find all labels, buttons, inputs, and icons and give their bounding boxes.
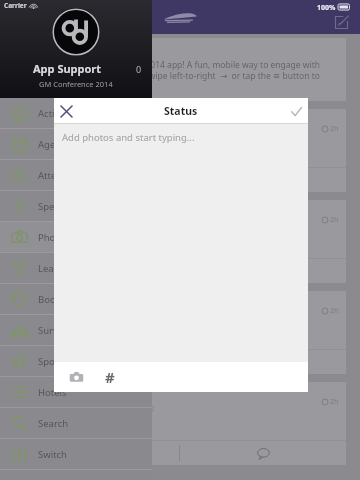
button[interactable]: Search (0, 408, 152, 438)
button[interactable]: Post status (284, 99, 308, 123)
button[interactable]: Comment (180, 259, 346, 283)
staticText: KL (29, 306, 39, 316)
staticText: Attendees (38, 169, 84, 182)
staticText: Agenda (38, 138, 73, 151)
button[interactable]: Surveys (0, 315, 152, 345)
staticText: Kyle Louis (53, 117, 96, 129)
button[interactable]: KL (14, 291, 346, 374)
staticText: Kyle Louis (53, 208, 96, 220)
staticText: Welcome to the GM Conferece 2014 app! A … (22, 59, 338, 92)
staticText: Hotels (38, 386, 67, 399)
staticText: GM Conferece 2014 Session #2 (53, 131, 155, 141)
button[interactable]: Add hashtag (98, 365, 122, 389)
button[interactable]: Comment (180, 168, 346, 192)
staticText: GM Conference 2014 (39, 79, 113, 89)
button[interactable]: Activity (0, 98, 152, 128)
button[interactable]: React (14, 168, 179, 192)
button[interactable]: Close (54, 99, 78, 123)
staticText: Bookmarks (38, 293, 89, 306)
button[interactable]: Photos (0, 222, 152, 252)
staticText: Activity (38, 107, 71, 120)
staticText: Search (38, 417, 69, 430)
button[interactable]: Compose post (330, 11, 352, 33)
staticText: Carrier (4, 1, 27, 10)
staticText: 3:52 PM (18, 3, 47, 13)
button[interactable]: Add photo (64, 365, 88, 389)
staticText: Leaderboard (38, 262, 96, 275)
staticText: App Support (33, 61, 102, 76)
staticText: GM Conferece 2014 Session #2 (53, 404, 155, 414)
staticText: Speakers (38, 200, 79, 213)
staticText: This is my first checkin! (22, 422, 114, 434)
staticText: GM Conferece 2014 Session #2 (53, 313, 155, 323)
staticText: KL (29, 124, 39, 134)
button[interactable]: React (14, 259, 179, 283)
button[interactable]: Hotels (0, 377, 152, 407)
button[interactable]: Carrier (0, 0, 152, 98)
staticText: 2h (330, 306, 339, 316)
staticText: KL (29, 215, 39, 225)
staticText: Kyle Louis (53, 299, 96, 311)
button[interactable]: React (14, 441, 179, 465)
staticText: 0 (136, 63, 142, 75)
button[interactable]: Add photos and start typing... (54, 124, 308, 362)
staticText: # (105, 367, 115, 387)
button[interactable]: KL (14, 109, 346, 192)
staticText: 2h (330, 124, 339, 134)
button[interactable]: Attendees (0, 160, 152, 190)
button[interactable]: Speakers (0, 191, 152, 221)
staticText: Photos (38, 231, 70, 244)
staticText: Promoted Post (22, 43, 75, 53)
staticText: Switch (38, 448, 67, 461)
button[interactable]: KL (14, 382, 346, 465)
button[interactable]: Leaderboard (0, 253, 152, 283)
staticText: 2h (330, 215, 339, 225)
button[interactable]: Sponsors (0, 346, 152, 376)
staticText: GM Conferece 2014 Session #2 (53, 222, 155, 232)
button[interactable]: React (14, 350, 179, 374)
staticText: Surveys (38, 324, 73, 337)
staticText: 100% (317, 3, 336, 13)
button[interactable]: Comment (180, 350, 346, 374)
button[interactable]: Switch (0, 439, 152, 469)
button[interactable]: Agenda (0, 129, 152, 159)
button[interactable]: Promoted Post (14, 38, 346, 101)
staticText: Status (164, 104, 198, 118)
staticText: 2h (330, 397, 339, 407)
button[interactable]: Comment (180, 441, 346, 465)
staticText: Kyle Louis (53, 390, 96, 402)
button[interactable]: Bookmarks (0, 284, 152, 314)
button[interactable]: KL (14, 200, 346, 283)
staticText: Add photos and start typing... (62, 131, 195, 144)
staticText: Sponsors (38, 355, 80, 368)
